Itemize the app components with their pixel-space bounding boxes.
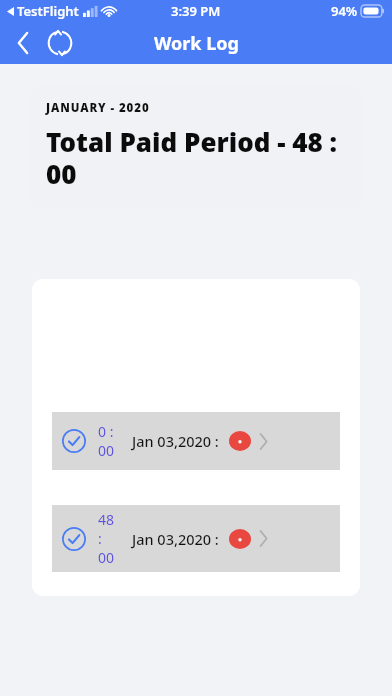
button[interactable]: Back	[6, 26, 40, 60]
staticText: JANUARY - 2020	[46, 100, 150, 116]
staticText: Jan 03,2020 :	[132, 431, 219, 451]
staticText: Jan 03,2020 :	[132, 529, 219, 549]
staticText: 3:39 PM	[171, 2, 221, 20]
button[interactable]: 48	[52, 505, 340, 572]
button[interactable]: 0 :	[52, 412, 340, 470]
staticText: 00	[98, 548, 115, 567]
staticText: 48	[98, 510, 115, 529]
staticText: 0 :	[98, 422, 114, 441]
staticText: TestFlight	[17, 2, 79, 20]
button[interactable]: Refresh	[40, 23, 80, 63]
staticText: :	[98, 529, 102, 548]
button[interactable]: JANUARY - 2020	[30, 85, 362, 208]
staticText: Work Log	[154, 31, 239, 56]
staticText: 94%	[331, 2, 358, 20]
staticText: 00	[98, 441, 115, 460]
staticText: Total Paid Period - 48 : 00	[46, 124, 348, 192]
